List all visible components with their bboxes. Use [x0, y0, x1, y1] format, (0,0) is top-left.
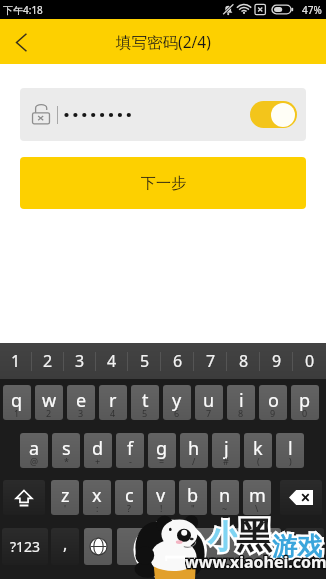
- staticText: 8: [238, 407, 244, 419]
- staticText: 0: [305, 350, 315, 372]
- staticText: 黑: [236, 513, 272, 558]
- button[interactable]: Enter: [285, 528, 324, 565]
- button[interactable]: y: [163, 385, 191, 420]
- button[interactable]: Backspace: [280, 480, 322, 515]
- staticText: f: [127, 436, 134, 461]
- staticText: =: [159, 455, 165, 467]
- button[interactable]: Show password toggle: [250, 101, 297, 128]
- button[interactable]: s: [52, 433, 80, 468]
- staticText: 4: [110, 407, 116, 419]
- staticText: 5: [142, 407, 148, 419]
- button[interactable]: j: [212, 433, 240, 468]
- staticText: 2: [43, 350, 53, 372]
- staticText: p: [299, 388, 311, 413]
- button[interactable]: 3: [64, 343, 96, 379]
- staticText: 黑: [236, 513, 272, 558]
- button[interactable]: f: [116, 433, 144, 468]
- staticText: ': [64, 502, 67, 514]
- staticText: 47%: [302, 3, 322, 17]
- button[interactable]: n: [211, 480, 239, 515]
- button[interactable]: p: [291, 385, 319, 420]
- staticText: i: [239, 388, 244, 413]
- button[interactable]: Back: [0, 21, 42, 63]
- button[interactable]: u: [195, 385, 223, 420]
- staticText: z: [61, 483, 70, 508]
- button[interactable]: z: [51, 480, 79, 515]
- staticText: o: [268, 388, 279, 413]
- button[interactable]: k: [244, 433, 272, 468]
- button[interactable]: q: [3, 385, 31, 420]
- staticText: -: [129, 455, 132, 467]
- staticText: 3: [78, 407, 84, 419]
- staticText: 填写密码(2/4): [116, 31, 211, 52]
- staticText: 3: [75, 350, 85, 372]
- staticText: 1: [11, 350, 21, 372]
- staticText: 游戏: [272, 531, 322, 562]
- button[interactable]: e: [67, 385, 95, 420]
- staticText: v: [156, 483, 166, 508]
- staticText: www.xiaohei.com: [185, 551, 326, 572]
- button[interactable]: v: [147, 480, 175, 515]
- staticText: g: [156, 436, 168, 461]
- button[interactable]: h: [180, 433, 208, 468]
- staticText: a: [29, 436, 40, 461]
- staticText: ?: [127, 502, 131, 514]
- staticText: 1: [14, 407, 20, 419]
- staticText: x: [92, 483, 102, 508]
- staticText: 0: [302, 407, 308, 419]
- button[interactable]: 6: [161, 343, 194, 379]
- button[interactable]: 4: [96, 343, 128, 379]
- button[interactable]: x: [83, 480, 111, 515]
- button[interactable]: Shift: [3, 480, 45, 515]
- staticText: s: [62, 436, 71, 461]
- staticText: r: [109, 388, 117, 413]
- staticText: e: [76, 388, 87, 413]
- button[interactable]: 0: [293, 343, 326, 379]
- button[interactable]: Change language: [84, 528, 112, 565]
- button[interactable]: i: [227, 385, 255, 420]
- staticText: h: [188, 436, 200, 461]
- staticText: *: [64, 455, 69, 467]
- button[interactable]: w: [35, 385, 63, 420]
- button[interactable]: l: [276, 433, 304, 468]
- button[interactable]: 5: [128, 343, 161, 379]
- staticText: j: [224, 436, 229, 461]
- button[interactable]: o: [259, 385, 287, 420]
- button[interactable]: t: [131, 385, 159, 420]
- button[interactable]: c: [115, 480, 143, 515]
- staticText: ): [289, 455, 292, 467]
- staticText: ": [191, 502, 195, 514]
- button[interactable]: 7: [194, 343, 227, 379]
- staticText: q: [11, 388, 23, 413]
- staticText: 6: [173, 350, 183, 372]
- staticText: 7: [206, 350, 216, 372]
- button[interactable]: g: [148, 433, 176, 468]
- button[interactable]: Show password toggle: [20, 88, 306, 141]
- staticText: y: [172, 388, 182, 413]
- button[interactable]: r: [99, 385, 127, 420]
- button[interactable]: d: [84, 433, 112, 468]
- button[interactable]: 2: [32, 343, 64, 379]
- staticText: /: [192, 455, 196, 467]
- button[interactable]: ?123: [2, 528, 48, 565]
- staticText: 4: [107, 350, 117, 372]
- button[interactable]: a: [20, 433, 48, 468]
- staticText: 小: [208, 517, 240, 557]
- staticText: \: [255, 502, 259, 514]
- staticText: !: [160, 502, 163, 514]
- button[interactable]: 9: [260, 343, 293, 379]
- button[interactable]: ,: [51, 528, 79, 565]
- button[interactable]: Space: [117, 528, 281, 565]
- button[interactable]: 8: [227, 343, 260, 379]
- staticText: +: [95, 455, 101, 467]
- button[interactable]: b: [179, 480, 207, 515]
- staticText: w: [42, 388, 57, 413]
- button[interactable]: 下一步: [20, 157, 306, 209]
- staticText: 游戏: [272, 531, 322, 562]
- staticText: 下午4:18: [3, 3, 43, 17]
- staticText: k: [253, 436, 263, 461]
- button[interactable]: 1: [0, 343, 32, 379]
- staticText: #: [223, 455, 229, 467]
- staticText: c: [125, 483, 134, 508]
- button[interactable]: m: [243, 480, 271, 515]
